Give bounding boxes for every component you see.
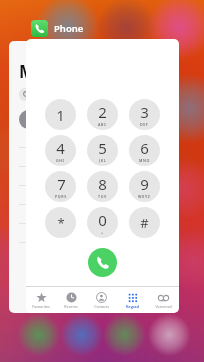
button[interactable]: 7 xyxy=(45,171,76,202)
staticText: # xyxy=(140,214,149,232)
staticText: 4 xyxy=(56,138,65,158)
button[interactable]: 0 xyxy=(87,207,118,238)
staticText: ABC xyxy=(98,122,107,127)
button[interactable]: Contacts xyxy=(86,287,117,313)
staticText: 6 xyxy=(140,138,149,158)
button[interactable]: 8 xyxy=(87,171,118,202)
staticText: MNO xyxy=(139,158,150,163)
button[interactable]: 1 xyxy=(45,99,76,130)
staticText: TUV xyxy=(98,194,107,199)
button[interactable]: Keypad xyxy=(117,287,148,313)
staticText: GHI xyxy=(56,158,65,163)
staticText: DEF xyxy=(140,122,149,127)
button[interactable]: Recents xyxy=(56,287,86,313)
staticText: 7 xyxy=(57,174,66,194)
staticText: M xyxy=(19,60,36,83)
button[interactable]: * xyxy=(45,207,76,238)
button[interactable]: # xyxy=(129,207,160,238)
button[interactable]: 3 xyxy=(129,99,160,130)
staticText: 2 xyxy=(98,102,107,122)
staticText: JKL xyxy=(99,158,107,163)
staticText: 5 xyxy=(98,138,107,158)
staticText: 0 xyxy=(98,210,107,230)
staticText: 9 xyxy=(140,174,149,194)
staticText: Phone xyxy=(54,22,84,35)
button[interactable]: 2 xyxy=(87,99,118,130)
staticText: Recents xyxy=(64,304,78,309)
staticText: WXYZ xyxy=(138,194,151,199)
button[interactable]: Voicemail xyxy=(148,287,179,313)
button[interactable]: 4 xyxy=(45,135,76,166)
staticText: Voicemail xyxy=(155,304,172,309)
staticText: 1 xyxy=(56,105,65,125)
staticText: 8 xyxy=(98,174,107,194)
staticText: + xyxy=(101,230,104,235)
button[interactable]: 5 xyxy=(87,135,118,166)
button[interactable]: Call xyxy=(88,248,117,277)
button[interactable]: 6 xyxy=(129,135,160,166)
staticText: Keypad xyxy=(126,304,139,309)
button[interactable]: Favourites xyxy=(26,287,56,313)
staticText: Favourites xyxy=(32,304,50,309)
staticText: Contacts xyxy=(94,304,109,309)
button[interactable]: 9 xyxy=(129,171,160,202)
staticText: PQRS xyxy=(55,194,67,199)
staticText: 3 xyxy=(140,102,149,122)
staticText: * xyxy=(57,214,65,232)
